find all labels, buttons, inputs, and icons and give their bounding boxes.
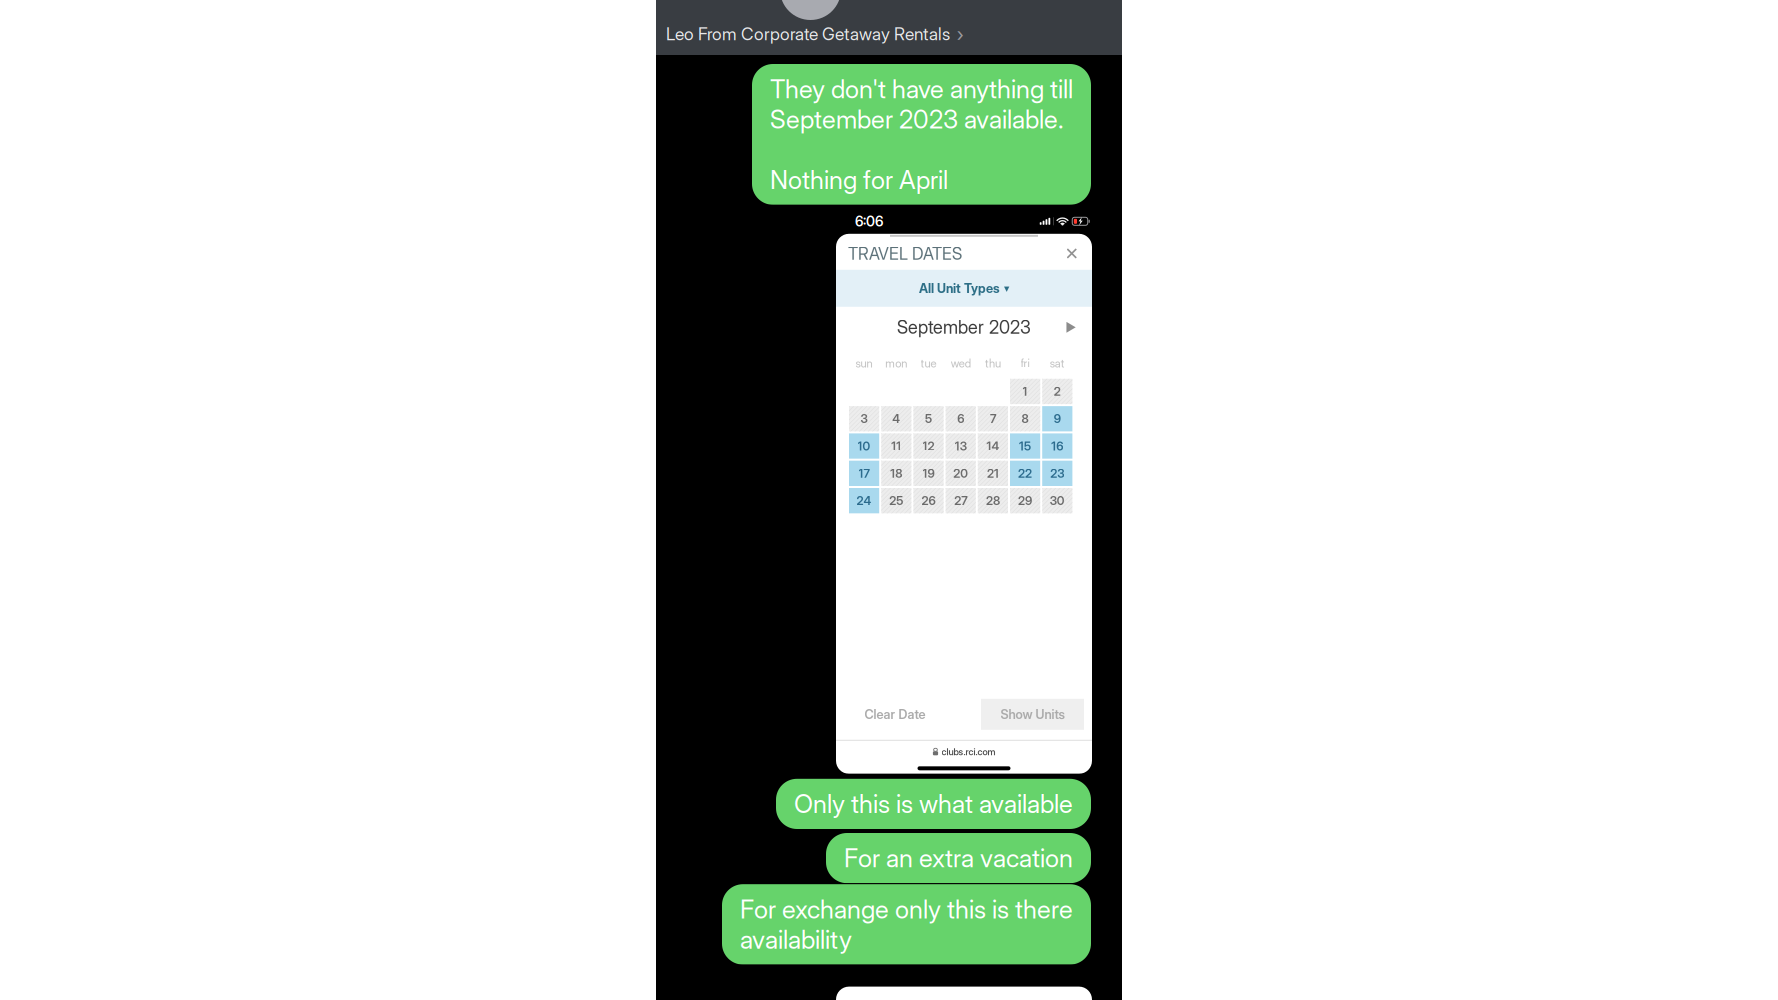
staticText: 28	[986, 493, 1000, 508]
staticText: 22	[1018, 466, 1032, 481]
staticText: All Unit Types	[919, 281, 1000, 296]
staticText: tue	[920, 356, 936, 370]
button[interactable]: 30	[1042, 488, 1072, 513]
button[interactable]: 9	[1042, 406, 1072, 431]
button[interactable]: 5	[913, 406, 944, 431]
staticText: 25	[889, 493, 903, 508]
staticText: 4	[892, 411, 900, 426]
staticText: Clear Date	[864, 707, 925, 722]
staticText: 26	[921, 493, 935, 508]
staticText: 18	[890, 466, 902, 481]
staticText: availability	[740, 924, 852, 955]
button[interactable]: 8	[1010, 406, 1040, 431]
staticText: 16	[1051, 439, 1063, 453]
staticText: 30	[1050, 493, 1065, 508]
button[interactable]: Clear Date	[845, 699, 945, 730]
button[interactable]: Close	[1062, 244, 1082, 264]
staticText: 27	[954, 493, 967, 508]
button[interactable]: 4	[881, 406, 911, 431]
staticText: 11	[891, 439, 901, 453]
staticText: September 2023	[897, 316, 1031, 338]
staticText: September 2023 available.	[770, 104, 1064, 135]
staticText: Only this is what available	[794, 789, 1073, 819]
staticText: sun	[856, 356, 873, 370]
staticText: 3	[861, 411, 868, 426]
button[interactable]: 11	[881, 433, 911, 459]
button[interactable]: 27	[946, 488, 976, 513]
staticText: Show Units	[1000, 707, 1064, 722]
button[interactable]: 23	[1042, 461, 1072, 486]
staticText: ✕	[1064, 244, 1079, 264]
staticText: 8	[1022, 411, 1029, 426]
button[interactable]: 16	[1042, 433, 1072, 459]
staticText: 6	[957, 411, 964, 426]
staticText: Nothing for April	[770, 164, 948, 195]
button[interactable]: 18	[881, 461, 911, 486]
button[interactable]: 26	[913, 488, 944, 513]
button[interactable]: 2	[1042, 379, 1072, 404]
button[interactable]: 14	[978, 433, 1008, 459]
staticText: 29	[1018, 493, 1032, 508]
button[interactable]: Leo From Corporate Getaway Rentals	[656, 0, 1122, 55]
staticText: TRAVEL DATES	[848, 244, 962, 264]
staticText: 10	[858, 439, 871, 453]
button[interactable]: 24	[849, 488, 879, 513]
button[interactable]: Next month	[1062, 318, 1080, 336]
staticText: 13	[955, 439, 967, 453]
staticText: 14	[986, 439, 999, 453]
button[interactable]: Show Units	[981, 699, 1084, 730]
staticText: 1	[1023, 384, 1028, 399]
button[interactable]: 6	[946, 406, 976, 431]
button[interactable]: 28	[978, 488, 1008, 513]
button[interactable]: 25	[881, 488, 911, 513]
staticText: sat	[1050, 356, 1065, 370]
button[interactable]: 7	[978, 406, 1008, 431]
staticText: clubs.rci.com	[941, 746, 995, 757]
staticText: 9	[1054, 411, 1061, 426]
staticText: ›	[957, 22, 963, 46]
staticText: 21	[987, 466, 999, 481]
staticText: 6:06	[855, 213, 883, 230]
staticText: 2	[1054, 384, 1061, 399]
staticText: wed	[951, 356, 971, 370]
staticText: fri	[1021, 356, 1030, 370]
button[interactable]: 12	[913, 433, 944, 459]
staticText: 24	[857, 493, 872, 508]
staticText: 19	[922, 466, 934, 481]
button[interactable]: 22	[1010, 461, 1040, 486]
button[interactable]: 17	[849, 461, 879, 486]
button[interactable]: 21	[978, 461, 1008, 486]
staticText: 17	[859, 466, 870, 481]
button[interactable]: 3	[849, 406, 879, 431]
staticText: 12	[922, 439, 934, 453]
staticText: 5	[925, 411, 932, 426]
staticText: thu	[985, 356, 1001, 370]
staticText: ▾	[1004, 282, 1009, 294]
staticText: 23	[1050, 466, 1064, 481]
button[interactable]: 20	[946, 461, 976, 486]
button[interactable]: 1	[1010, 379, 1040, 404]
staticText: 15	[1019, 439, 1031, 453]
button[interactable]: 29	[1010, 488, 1040, 513]
staticText: They don't have anything till	[770, 74, 1073, 104]
staticText: For an extra vacation	[844, 843, 1073, 873]
button[interactable]: 19	[913, 461, 944, 486]
staticText: 20	[953, 466, 968, 481]
staticText: 7	[990, 411, 996, 426]
staticText: mon	[885, 356, 907, 370]
button[interactable]: 13	[946, 433, 976, 459]
button[interactable]: 10	[849, 433, 879, 459]
button[interactable]: 15	[1010, 433, 1040, 459]
staticText: Leo From Corporate Getaway Rentals	[666, 23, 950, 44]
staticText: For exchange only this is there	[740, 894, 1073, 925]
staticText: ▶	[1065, 320, 1076, 334]
button[interactable]: All Unit Types	[836, 270, 1092, 307]
